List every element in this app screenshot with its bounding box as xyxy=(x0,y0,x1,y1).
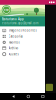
staticText: Favoritos xyxy=(9,41,20,44)
staticText: Ajustes xyxy=(9,52,19,56)
button[interactable]: Imágenes Recientes xyxy=(0,28,45,33)
button[interactable]: Categorías xyxy=(0,33,45,39)
button[interactable]: Ajustes xyxy=(0,51,45,57)
staticText: Ecoturismo App xyxy=(2,17,24,21)
staticText: ecoturismo.app@gmail.com xyxy=(2,21,38,25)
button[interactable]: Add xyxy=(46,84,53,91)
staticText: Imágenes Recientes xyxy=(9,29,37,32)
staticText: eco xyxy=(4,8,9,11)
button[interactable]: Home xyxy=(27,95,30,98)
button[interactable]: Back xyxy=(12,94,15,98)
button[interactable]: Favoritos xyxy=(0,39,45,45)
staticText: Archivo xyxy=(9,46,19,50)
staticText: Categorías xyxy=(9,35,23,38)
button[interactable]: Recents xyxy=(42,95,44,98)
button[interactable]: Archivo xyxy=(0,45,45,51)
